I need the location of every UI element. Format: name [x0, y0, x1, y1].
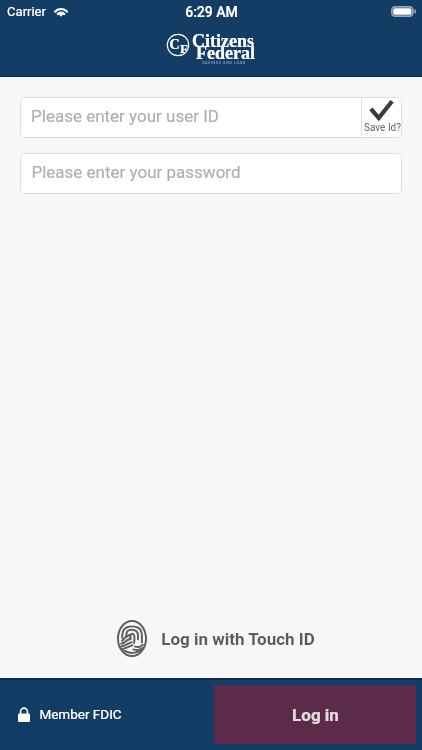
- staticText: Log in: [292, 705, 339, 725]
- staticText: Please enter your user ID: [31, 106, 219, 126]
- staticText: Federal: [196, 43, 255, 63]
- button[interactable]: Save Id: [362, 97, 402, 138]
- staticText: 6:29 AM: [185, 4, 238, 20]
- button[interactable]: Please enter your user ID: [20, 97, 361, 138]
- staticText: F: [180, 41, 188, 55]
- staticText: Log in with Touch ID: [161, 629, 315, 649]
- staticText: SAVINGS AND LOAN: [202, 60, 246, 64]
- button[interactable]: Log in: [214, 685, 416, 744]
- staticText: Save Id?: [364, 122, 401, 134]
- button[interactable]: Please enter your password: [20, 153, 402, 194]
- staticText: Citizens: [192, 31, 254, 51]
- staticText: Member FDIC: [39, 706, 122, 722]
- staticText: Please enter your password: [31, 162, 241, 182]
- button[interactable]: Log in with Touch ID: [109, 616, 323, 661]
- staticText: C: [169, 37, 180, 53]
- staticText: Carrier: [7, 4, 46, 19]
